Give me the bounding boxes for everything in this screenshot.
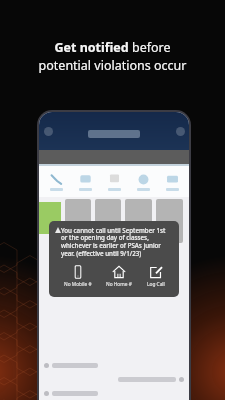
staticText: No Mobile # (64, 281, 92, 288)
staticText: Log Call (147, 281, 165, 288)
button[interactable]: Quick action 1 (41, 166, 71, 197)
staticText: No Home # (106, 281, 132, 288)
button[interactable]: No Mobile # (58, 264, 98, 289)
button[interactable]: Quick action 3 (100, 166, 129, 197)
button[interactable]: No Home # (100, 264, 138, 289)
staticText: Get notified before potential violations… (0, 39, 225, 74)
staticText: You cannot call until September 1st or t… (61, 226, 173, 258)
button[interactable]: Contact card 2 (95, 199, 121, 243)
button[interactable]: More options (176, 127, 185, 136)
button[interactable]: Back (44, 127, 53, 136)
button[interactable]: Log Call (141, 264, 171, 289)
button[interactable]: Quick action 4 (129, 166, 158, 197)
button[interactable]: Quick action 2 (71, 166, 100, 197)
button[interactable]: Quick action 5 (158, 166, 187, 197)
button[interactable]: Contact card 1 (65, 199, 91, 243)
button[interactable]: Contact card 4 (156, 199, 183, 243)
button[interactable]: Contact card 3 (125, 199, 152, 243)
